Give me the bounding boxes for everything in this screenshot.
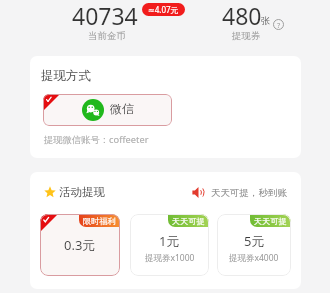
staticText: 1元 [159, 232, 180, 250]
staticText: 天天可提 [172, 216, 205, 226]
staticText: 天天可提，秒到账 [211, 187, 287, 199]
staticText: 5元 [244, 232, 265, 250]
staticText: 微信 [110, 101, 134, 116]
staticText: ? [277, 20, 281, 30]
button[interactable]: 0.3元 [40, 214, 120, 276]
button[interactable]: 5元 [217, 214, 291, 276]
staticText: 提现券x4000 [229, 252, 279, 264]
staticText: 张 [261, 15, 271, 27]
staticText: 40734 [72, 0, 138, 31]
staticText: ≈4.07元 [148, 4, 179, 15]
staticText: 480 [222, 0, 262, 31]
staticText: 提现方式 [41, 68, 91, 84]
button[interactable]: Announcement [192, 186, 205, 199]
staticText: 0.3元 [64, 236, 96, 254]
staticText: 提现微信账号：coffeeter [44, 133, 149, 146]
staticText: 限时福利 [83, 216, 116, 226]
staticText: 活动提现 [59, 185, 105, 199]
staticText: 提现券x1000 [145, 252, 195, 264]
button[interactable]: 微信 [43, 94, 172, 126]
button[interactable]: 1元 [130, 214, 209, 276]
staticText: 天天可提 [254, 216, 287, 226]
button[interactable]: Help [273, 19, 284, 30]
staticText: 提现券 [232, 30, 261, 42]
staticText: 当前金币 [88, 30, 126, 42]
